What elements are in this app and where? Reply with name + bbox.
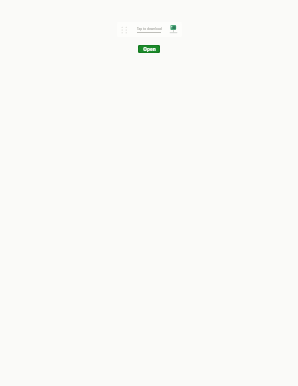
button[interactable]: Open: [138, 45, 160, 53]
button[interactable]: App icon: [168, 24, 179, 35]
button[interactable]: Tap to download: [117, 22, 182, 37]
staticText: Open: [143, 46, 156, 52]
staticText: Tap to download: [137, 27, 162, 31]
